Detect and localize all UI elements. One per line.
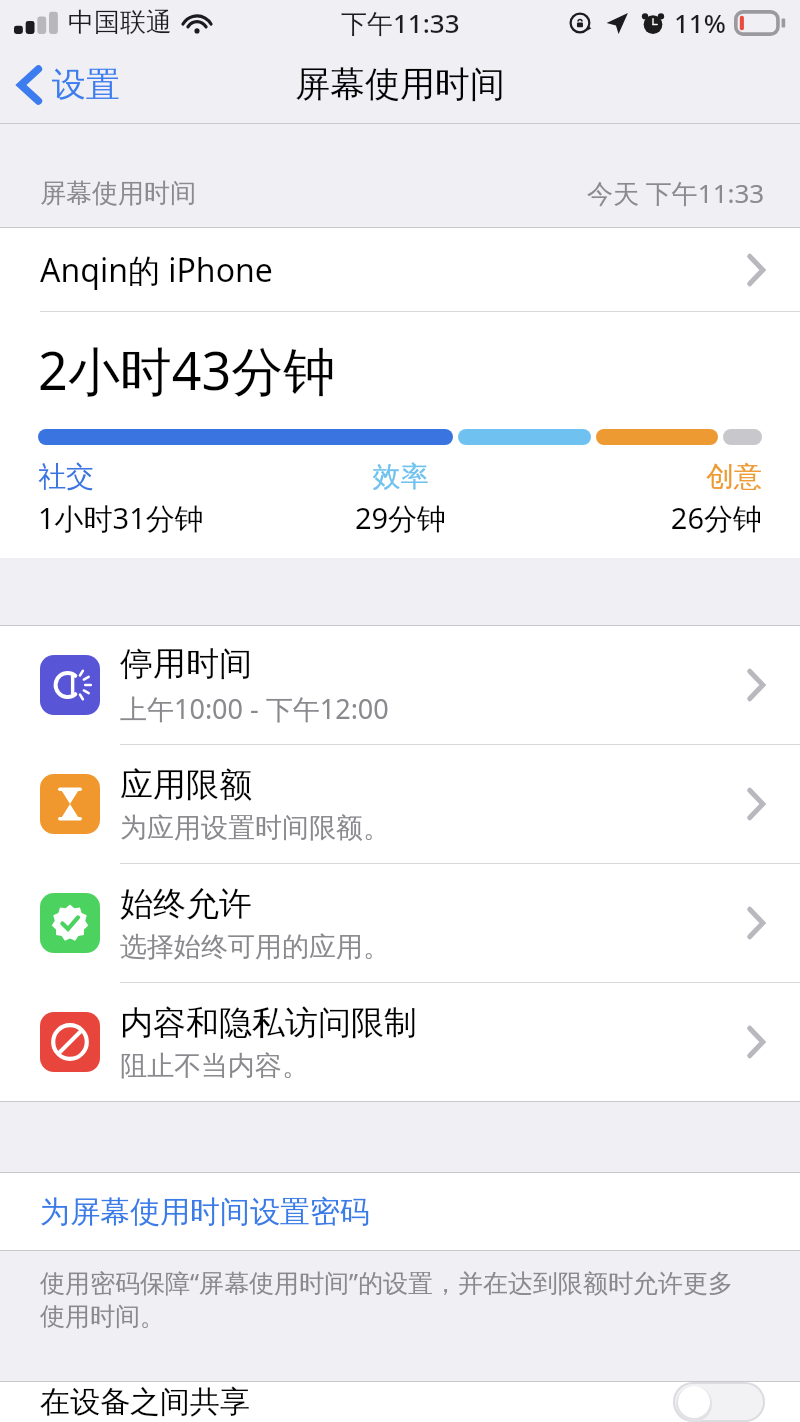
- staticText: 29分钟: [280, 498, 521, 538]
- staticText: 内容和隐私访问限制: [120, 1002, 417, 1044]
- staticText: 在设备之间共享: [40, 1383, 250, 1421]
- button[interactable]: 设置: [0, 57, 134, 112]
- staticText: 今天 下午11:33: [587, 175, 765, 211]
- staticText: 下午11:33: [341, 5, 460, 41]
- button[interactable]: 应用限额: [0, 745, 800, 863]
- staticText: 阻止不当内容。: [120, 1049, 309, 1083]
- staticText: 中国联通: [68, 6, 172, 39]
- staticText: 选择始终可用的应用。: [120, 930, 390, 964]
- button[interactable]: 内容和隐私访问限制: [0, 983, 800, 1101]
- staticText: 上午10:00 - 下午12:00: [120, 690, 389, 727]
- staticText: 26分钟: [521, 498, 762, 538]
- staticText: 停用时间: [120, 643, 252, 685]
- staticText: Anqin的 iPhone: [40, 248, 273, 292]
- staticText: 屏幕使用时间: [295, 62, 505, 106]
- button[interactable]: Anqin的 iPhone: [0, 228, 800, 311]
- button[interactable]: 始终允许: [0, 864, 800, 982]
- button[interactable]: 在设备之间共享: [0, 1382, 800, 1422]
- staticText: 设置: [52, 63, 120, 106]
- staticText: 为应用设置时间限额。: [120, 811, 390, 845]
- staticText: 社交: [38, 459, 280, 494]
- staticText: 11%: [674, 5, 726, 40]
- staticText: 屏幕使用时间: [40, 177, 196, 210]
- button[interactable]: 为屏幕使用时间设置密码: [0, 1173, 800, 1250]
- staticText: 效率: [280, 459, 521, 494]
- staticText: 始终允许: [120, 883, 252, 925]
- staticText: 应用限额: [120, 764, 252, 806]
- staticText: 创意: [521, 459, 762, 494]
- staticText: 1小时31分钟: [38, 498, 280, 538]
- button[interactable]: 在设备之间共享 开关: [673, 1382, 765, 1422]
- staticText: 2小时43分钟: [38, 334, 336, 405]
- button[interactable]: 停用时间: [0, 626, 800, 744]
- staticText: 使用密码保障“屏幕使用时间”的设置，并在达到限额时允许更多 使用时间。: [40, 1265, 733, 1333]
- staticText: 为屏幕使用时间设置密码: [40, 1193, 370, 1231]
